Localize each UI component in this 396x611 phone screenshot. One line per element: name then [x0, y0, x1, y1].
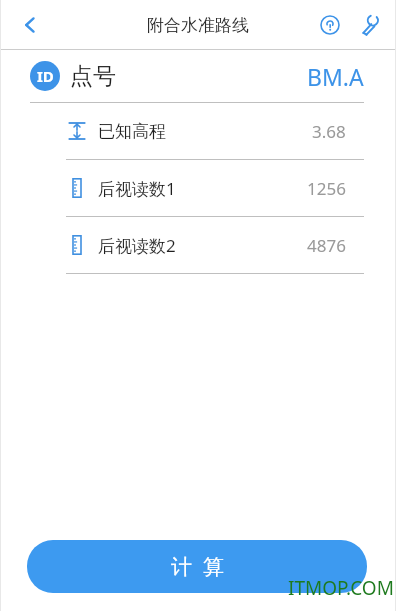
- button[interactable]: ID: [0, 50, 396, 102]
- button[interactable]: Back: [6, 1, 54, 49]
- staticText: 已知高程: [98, 121, 166, 142]
- staticText: 后视读数2: [98, 234, 176, 257]
- staticText: 4876: [307, 234, 346, 257]
- button[interactable]: 后视读数2: [0, 217, 396, 273]
- button[interactable]: Settings: [350, 5, 390, 45]
- button[interactable]: 计 算: [27, 540, 367, 593]
- staticText: BM.A: [307, 61, 364, 92]
- staticText: 3.68: [312, 120, 346, 143]
- staticText: ID: [37, 66, 54, 86]
- staticText: 计 算: [171, 552, 224, 581]
- button[interactable]: 已知高程: [0, 103, 396, 159]
- staticText: 点号: [70, 62, 116, 91]
- button[interactable]: Help: [310, 5, 350, 45]
- staticText: 后视读数1: [98, 177, 176, 200]
- staticText: 1256: [307, 177, 346, 200]
- staticText: 附合水准路线: [147, 15, 249, 36]
- staticText: ITMOP.COM: [288, 575, 394, 601]
- button[interactable]: 后视读数1: [0, 160, 396, 216]
